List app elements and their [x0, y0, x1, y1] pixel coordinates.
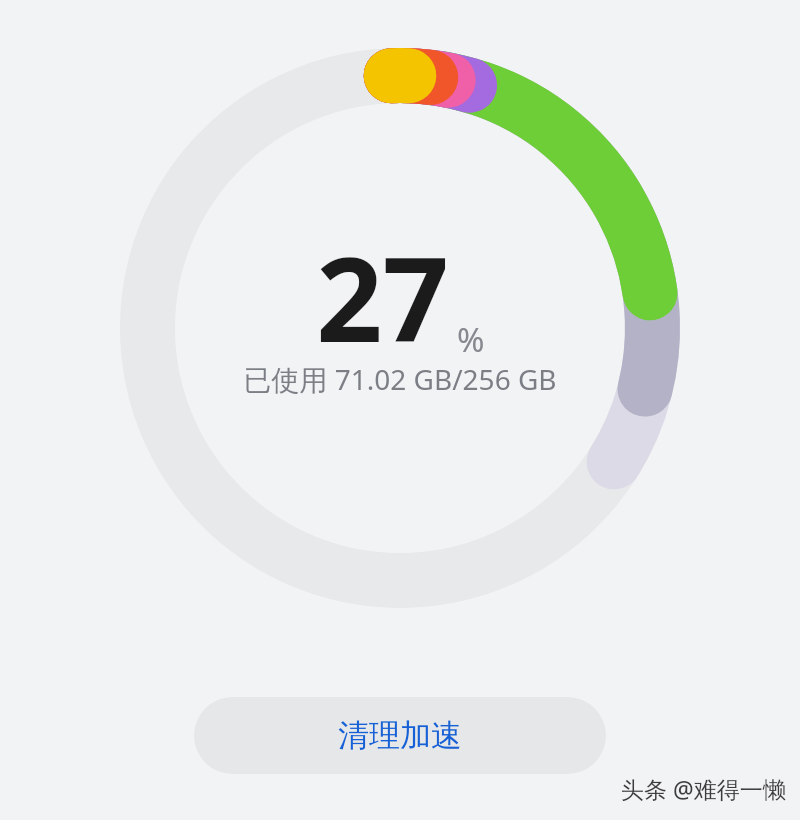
staticText: 清理加速: [338, 716, 462, 755]
button[interactable]: 清理加速: [194, 697, 606, 774]
staticText: 头条 @难得一懒: [621, 773, 786, 804]
staticText: 已使用 71.02 GB/256 GB: [243, 360, 557, 398]
staticText: 27: [316, 218, 449, 376]
staticText: %: [457, 317, 485, 362]
